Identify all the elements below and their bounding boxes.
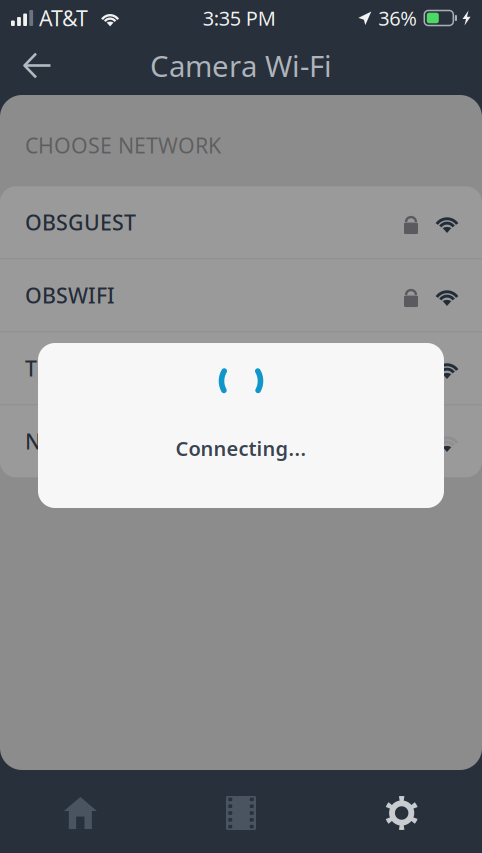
staticText: TP-LINK bbox=[25, 354, 106, 382]
staticText: CHOOSE NETWORK bbox=[25, 131, 221, 159]
button[interactable]: Settings bbox=[321, 778, 482, 853]
button[interactable]: OBSWIFI bbox=[0, 259, 482, 331]
staticText: Connecting... bbox=[175, 435, 306, 462]
staticText: 36% bbox=[378, 5, 417, 31]
button[interactable]: NETGEAR bbox=[0, 405, 482, 477]
staticText: AT&T bbox=[39, 4, 88, 32]
staticText: 3:35 PM bbox=[203, 5, 276, 31]
staticText: OBSGUEST bbox=[25, 208, 136, 236]
staticText: OBSWIFI bbox=[25, 281, 115, 309]
staticText: Camera Wi-Fi bbox=[150, 46, 332, 85]
button[interactable]: TP-LINK bbox=[0, 332, 482, 404]
button[interactable]: Home bbox=[0, 778, 161, 853]
button[interactable]: OBSGUEST bbox=[0, 186, 482, 258]
button[interactable]: Media bbox=[161, 778, 321, 853]
button[interactable]: Back bbox=[0, 42, 66, 89]
staticText: NETGEAR bbox=[25, 427, 121, 455]
